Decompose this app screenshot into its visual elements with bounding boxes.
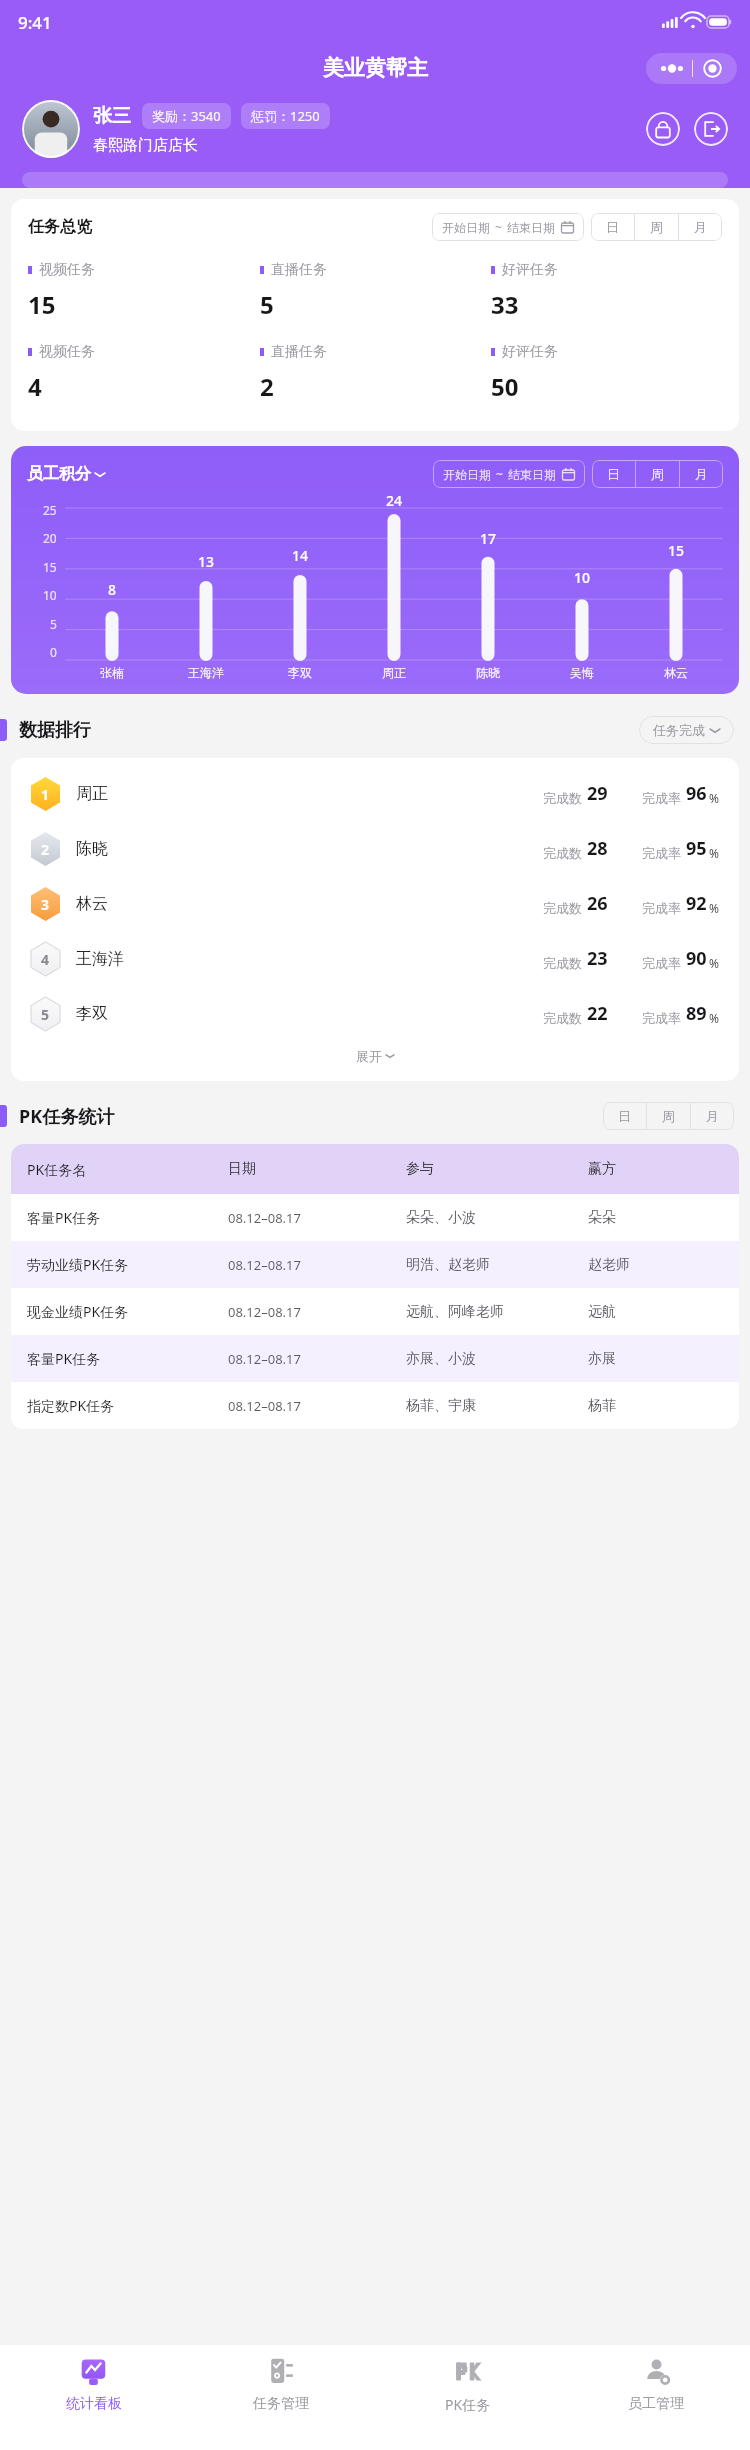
button[interactable]: 1 xyxy=(11,766,739,821)
staticText: 张楠 xyxy=(100,665,124,680)
button[interactable]: 客量PK任务 xyxy=(11,1335,739,1382)
button[interactable]: Avatar xyxy=(22,100,80,158)
button[interactable]: 周 xyxy=(647,1102,690,1130)
staticText: 完成率 xyxy=(642,845,681,861)
staticText: % xyxy=(709,900,719,916)
button[interactable]: Lock xyxy=(646,112,680,146)
staticText: 25 xyxy=(43,502,57,518)
button[interactable]: 客量PK任务 xyxy=(11,1194,739,1241)
staticText: 参与 xyxy=(406,1160,588,1178)
button[interactable]: 日 xyxy=(603,1102,646,1130)
staticText: 0 xyxy=(50,644,57,660)
staticText: 杨菲、宇康 xyxy=(406,1397,588,1415)
button[interactable]: 月 xyxy=(691,1102,734,1130)
button[interactable]: 劳动业绩PK任务 xyxy=(11,1241,739,1288)
staticText: 28 xyxy=(587,836,608,861)
button[interactable]: 2 xyxy=(11,821,739,876)
staticText: 杨菲 xyxy=(588,1397,723,1415)
staticText: 08.12–08.17 xyxy=(228,1303,406,1321)
button[interactable]: 开始日期 xyxy=(432,213,584,241)
staticText: 惩罚：1250 xyxy=(251,107,320,125)
staticText: 好评任务 xyxy=(502,343,558,361)
button[interactable]: 周 xyxy=(636,460,679,488)
staticText: 90 xyxy=(686,946,707,971)
staticText: 92 xyxy=(686,891,707,916)
staticText: 开始日期 xyxy=(442,220,490,235)
staticText: 明浩、赵老师 xyxy=(406,1256,588,1274)
staticText: 10 xyxy=(43,587,57,603)
staticText: 结束日期 xyxy=(508,467,556,482)
staticText: 89 xyxy=(686,1001,707,1026)
staticText: 08.12–08.17 xyxy=(228,1256,406,1274)
button[interactable]: 现金业绩PK任务 xyxy=(11,1288,739,1335)
staticText: 08.12–08.17 xyxy=(228,1397,406,1415)
staticText: 劳动业绩PK任务 xyxy=(27,1255,228,1274)
staticText: 数据排行 xyxy=(19,719,91,742)
staticText: 展开 xyxy=(356,1048,382,1064)
button[interactable]: 统计看板 xyxy=(0,2345,187,2450)
button[interactable]: 4 xyxy=(11,931,739,986)
button[interactable]: 员工管理 xyxy=(562,2345,750,2450)
staticText: 月 xyxy=(695,466,708,482)
button[interactable]: 指定数PK任务 xyxy=(11,1382,739,1429)
staticText: 5 xyxy=(50,616,57,632)
staticText: PK任务统计 xyxy=(19,1104,115,1129)
staticText: 8 xyxy=(108,580,117,599)
staticText: 月 xyxy=(706,1108,719,1124)
staticText: 王海洋 xyxy=(76,949,206,969)
staticText: 20 xyxy=(43,530,57,546)
staticText: 开始日期 xyxy=(443,467,491,482)
button[interactable]: 日 xyxy=(592,460,635,488)
button[interactable]: 月 xyxy=(680,460,723,488)
staticText: 客量PK任务 xyxy=(27,1208,228,1227)
button[interactable]: 日 xyxy=(591,213,634,241)
staticText: 朵朵、小波 xyxy=(406,1209,588,1227)
staticText: 王海洋 xyxy=(188,665,224,680)
staticText: 完成率 xyxy=(642,955,681,971)
staticText: 完成数 xyxy=(543,845,582,861)
button[interactable]: 任务管理 xyxy=(187,2345,374,2450)
button[interactable]: PK任务 xyxy=(374,2345,562,2450)
button[interactable]: Menu xyxy=(646,53,737,84)
button[interactable]: 5 xyxy=(11,986,739,1041)
staticText: 日 xyxy=(618,1108,631,1124)
staticText: 13 xyxy=(198,552,215,571)
button[interactable]: Logout xyxy=(694,112,728,146)
staticText: 5 xyxy=(41,1005,50,1024)
staticText: 赵老师 xyxy=(588,1256,723,1274)
staticText: % xyxy=(709,1010,719,1026)
staticText: 08.12–08.17 xyxy=(228,1350,406,1368)
staticText: 10 xyxy=(574,568,591,587)
staticText: 林云 xyxy=(664,665,688,680)
staticText: 周 xyxy=(651,466,664,482)
staticText: 4 xyxy=(28,370,42,403)
staticText: 9:41 xyxy=(18,11,52,34)
staticText: 完成率 xyxy=(642,900,681,916)
button[interactable]: 开始日期 xyxy=(433,460,585,488)
staticText: % xyxy=(709,955,719,971)
staticText: 日 xyxy=(607,466,620,482)
staticText: 指定数PK任务 xyxy=(27,1396,228,1415)
staticText: ~ xyxy=(495,219,502,235)
staticText: 17 xyxy=(480,529,497,548)
staticText: 陈晓 xyxy=(76,839,206,859)
staticText: 50 xyxy=(491,370,519,403)
staticText: 任务完成 xyxy=(653,722,705,738)
button[interactable]: 周 xyxy=(635,213,678,241)
staticText: 95 xyxy=(686,836,707,861)
staticText: 周 xyxy=(650,219,663,235)
staticText: 林云 xyxy=(76,894,206,914)
staticText: 朵朵 xyxy=(588,1209,723,1227)
staticText: PK任务名 xyxy=(27,1160,228,1179)
staticText: 周正 xyxy=(382,665,406,680)
staticText: 美业黄帮主 xyxy=(323,55,428,81)
staticText: 完成率 xyxy=(642,790,681,806)
button[interactable]: 任务完成 xyxy=(639,716,734,744)
button[interactable]: 员工积分 xyxy=(27,464,105,484)
staticText: 完成数 xyxy=(543,1010,582,1026)
button[interactable]: 展开 xyxy=(11,1041,739,1071)
button[interactable]: 3 xyxy=(11,876,739,931)
button[interactable]: 月 xyxy=(679,213,722,241)
staticText: 完成数 xyxy=(543,790,582,806)
